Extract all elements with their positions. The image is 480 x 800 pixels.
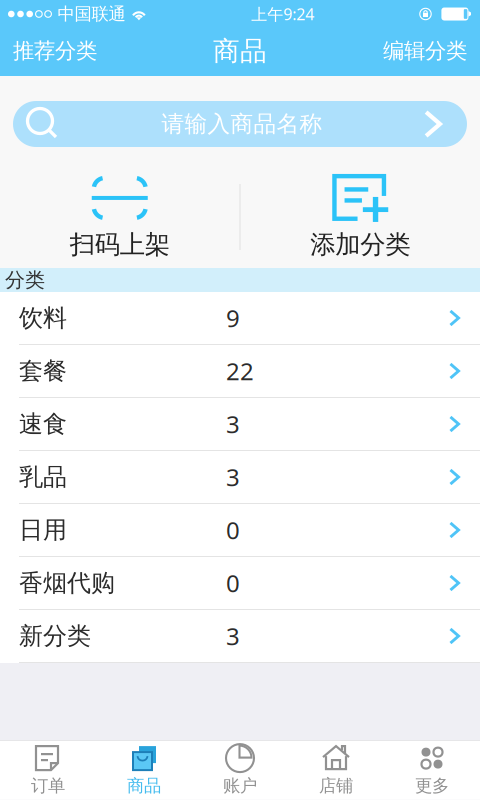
button[interactable]: 更多	[384, 739, 480, 800]
staticText: 店铺	[319, 775, 353, 796]
button[interactable]: 扫码上架	[0, 174, 239, 260]
staticText: 账户	[223, 775, 257, 796]
staticText: 订单	[31, 775, 65, 796]
staticText: 编辑分类	[383, 38, 467, 64]
button[interactable]: 账户	[192, 739, 288, 800]
staticText: 3	[226, 620, 240, 652]
staticText: 0	[226, 567, 240, 599]
button[interactable]: 香烟代购	[0, 557, 480, 610]
staticText: 乳品	[19, 462, 67, 492]
staticText: 扫码上架	[70, 229, 170, 260]
staticText: 日用	[19, 515, 67, 545]
button[interactable]: 日用	[0, 504, 480, 557]
staticText: 中国联通	[57, 3, 125, 25]
staticText: 更多	[415, 775, 449, 796]
staticText: 商品	[127, 775, 161, 796]
button[interactable]: 编辑分类	[370, 29, 480, 73]
staticText: 3	[226, 408, 240, 440]
button[interactable]: 推荐分类	[0, 29, 110, 73]
staticText: 上午9:24	[251, 3, 314, 25]
staticText: 3	[226, 461, 240, 493]
staticText: 添加分类	[310, 229, 410, 260]
button[interactable]: 店铺	[288, 739, 384, 800]
staticText: 速食	[19, 409, 67, 439]
staticText: 推荐分类	[13, 38, 97, 64]
button[interactable]: 商品	[96, 739, 192, 800]
staticText: 请输入商品名称	[161, 110, 322, 138]
button[interactable]: 速食	[0, 398, 480, 451]
staticText: 9	[226, 302, 240, 334]
staticText: 0	[226, 514, 240, 546]
button[interactable]: 添加分类	[240, 174, 480, 260]
button[interactable]: 新分类	[0, 610, 480, 663]
button[interactable]: 乳品	[0, 451, 480, 504]
staticText: 分类	[5, 268, 45, 292]
button[interactable]: 订单	[0, 739, 96, 800]
staticText: 商品	[213, 35, 267, 67]
staticText: 新分类	[19, 621, 91, 651]
staticText: 套餐	[19, 356, 67, 386]
staticText: 22	[226, 355, 254, 387]
staticText: 香烟代购	[19, 568, 115, 598]
button[interactable]: 请输入商品名称	[0, 101, 480, 147]
button[interactable]: 饮料	[0, 292, 480, 345]
staticText: 饮料	[19, 303, 67, 333]
button[interactable]: 套餐	[0, 345, 480, 398]
